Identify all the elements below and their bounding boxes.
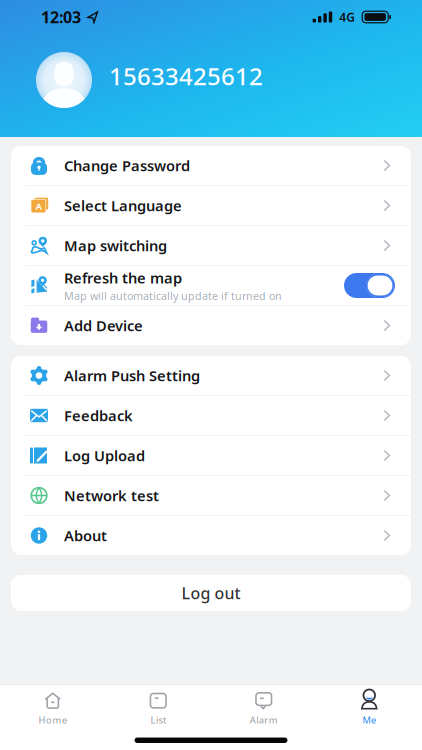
- button[interactable]: Refresh the map: [344, 273, 395, 298]
- staticText: Alarm Push Setting: [64, 366, 200, 385]
- staticText: Change Password: [64, 156, 190, 175]
- staticText: Add Device: [64, 316, 143, 335]
- button[interactable]: Add Device: [11, 306, 411, 345]
- button[interactable]: Home: [0, 689, 105, 726]
- staticText: Me: [362, 714, 376, 726]
- staticText: Map will automatically update if turned …: [64, 289, 282, 303]
- staticText: Log out: [181, 582, 240, 604]
- staticText: 12:03: [41, 6, 81, 28]
- button[interactable]: Alarm: [211, 689, 316, 726]
- staticText: Refresh the map: [64, 268, 182, 288]
- button[interactable]: List: [105, 689, 211, 726]
- button[interactable]: Feedback: [11, 396, 411, 435]
- button[interactable]: Me: [316, 689, 422, 726]
- button[interactable]: A: [11, 186, 411, 225]
- staticText: Home: [38, 714, 67, 726]
- button[interactable]: Log out: [11, 575, 411, 611]
- staticText: List: [150, 714, 166, 726]
- staticText: Log Upload: [64, 446, 145, 465]
- staticText: About: [64, 526, 107, 545]
- button[interactable]: Alarm Push Setting: [11, 356, 411, 395]
- button[interactable]: About: [11, 516, 411, 555]
- staticText: Select Language: [64, 196, 182, 215]
- staticText: Feedback: [64, 406, 133, 425]
- staticText: A: [35, 200, 41, 212]
- staticText: 4G: [339, 9, 355, 25]
- button[interactable]: Network test: [11, 476, 411, 515]
- button[interactable]: Log Upload: [11, 436, 411, 475]
- staticText: Alarm: [250, 714, 278, 726]
- staticText: Network test: [64, 486, 159, 505]
- staticText: 15633425612: [109, 60, 263, 92]
- staticText: Map switching: [64, 236, 167, 255]
- button[interactable]: Change Password: [11, 146, 411, 185]
- button[interactable]: Map switching: [11, 226, 411, 265]
